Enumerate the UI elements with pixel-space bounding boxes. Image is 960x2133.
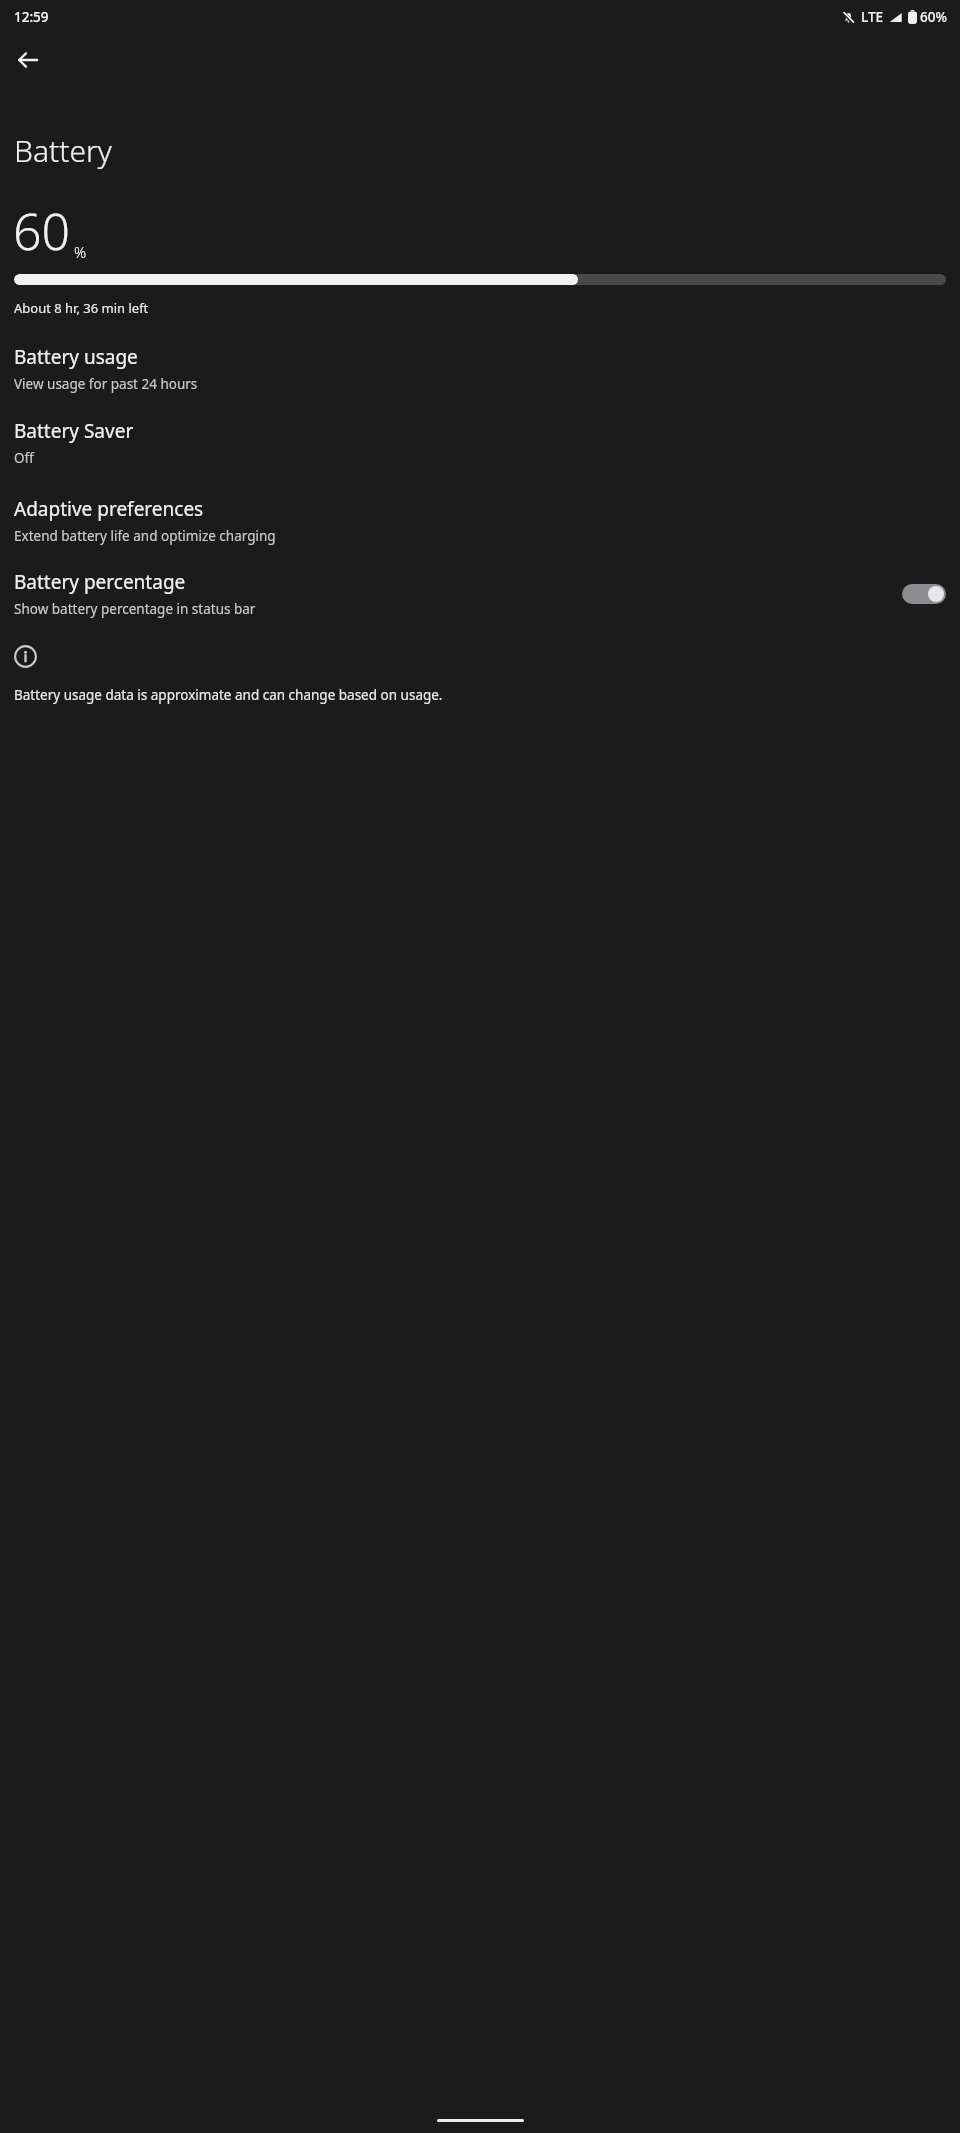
other: Information xyxy=(14,645,37,668)
staticText: View usage for past 24 hours xyxy=(14,375,198,393)
button[interactable]: Adaptive preferences xyxy=(0,494,960,547)
staticText: Show battery percentage in status bar xyxy=(14,600,256,618)
button[interactable]: Battery usage xyxy=(0,342,960,395)
staticText: Battery usage data is approximate and ca… xyxy=(14,686,443,704)
staticText: 60 xyxy=(13,197,71,265)
staticText: % xyxy=(74,242,87,262)
button[interactable]: Battery percentage xyxy=(0,569,960,618)
staticText: Adaptive preferences xyxy=(14,496,204,522)
staticText: Battery xyxy=(14,130,112,171)
staticText: Battery percentage xyxy=(14,569,186,595)
staticText: Off xyxy=(14,449,34,467)
staticText: Extend battery life and optimize chargin… xyxy=(14,527,276,545)
staticText: 12:59 xyxy=(14,8,49,26)
button[interactable]: Battery Saver xyxy=(0,416,960,469)
staticText: About 8 hr, 36 min left xyxy=(14,299,149,317)
button[interactable]: Back xyxy=(6,38,50,82)
staticText: LTE xyxy=(861,8,884,26)
staticText: Battery Saver xyxy=(14,418,134,444)
staticText: 60% xyxy=(920,8,947,26)
staticText: Battery usage xyxy=(14,344,138,370)
